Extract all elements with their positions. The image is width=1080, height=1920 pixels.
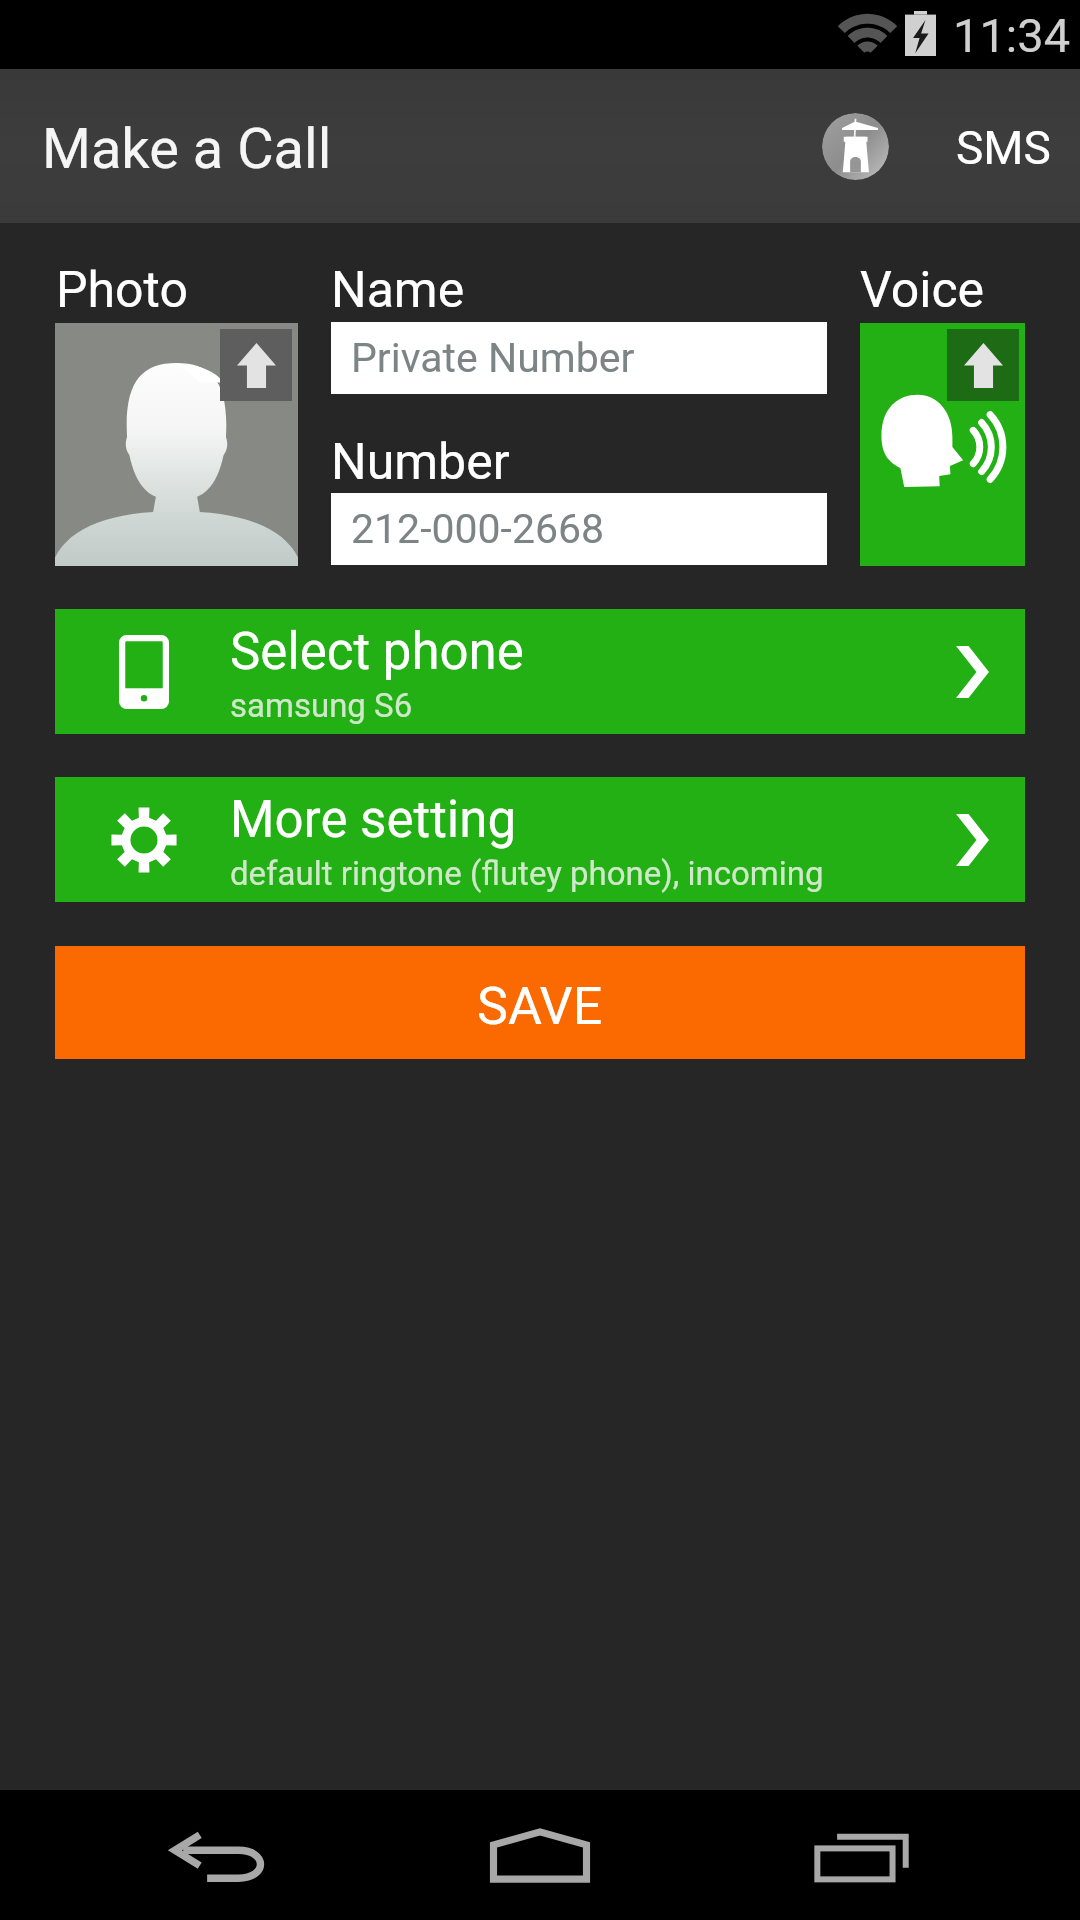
staticText: SMS <box>956 121 1051 175</box>
button[interactable]: SAVE <box>55 946 1025 1059</box>
button[interactable]: 212-000-2668 <box>331 493 827 565</box>
button[interactable]: Select photo <box>55 323 298 566</box>
staticText: 11:34 <box>953 8 1071 63</box>
staticText: Private Number <box>351 334 635 382</box>
staticText: More setting <box>230 790 517 850</box>
button[interactable]: Voice input <box>860 323 1025 566</box>
staticText: default ringtone (flutey phone), incomin… <box>230 854 824 893</box>
button[interactable]: Select phone <box>55 609 1025 734</box>
staticText: Photo <box>56 261 188 320</box>
staticText: Name <box>331 261 465 320</box>
staticText: SAVE <box>477 976 603 1037</box>
staticText: Number <box>331 433 510 492</box>
button[interactable]: Home <box>470 1810 610 1900</box>
button[interactable]: Private Number <box>331 322 827 394</box>
staticText: Voice <box>860 261 985 320</box>
staticText: 212-000-2668 <box>351 505 605 553</box>
staticText: Select phone <box>230 622 524 682</box>
button[interactable]: App icon <box>822 113 889 180</box>
button[interactable]: Back <box>150 1810 290 1900</box>
staticText: Make a Call <box>42 116 332 182</box>
staticText: samsung S6 <box>230 686 413 725</box>
button[interactable]: Recent apps <box>790 1810 930 1900</box>
button[interactable]: SMS <box>938 105 1069 191</box>
button[interactable]: More setting <box>55 777 1025 902</box>
